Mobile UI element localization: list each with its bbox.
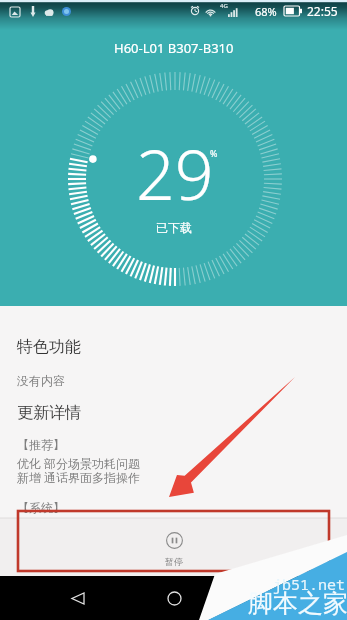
staticText: H60-L01 B307-B310: [114, 39, 234, 57]
staticText: %: [210, 147, 218, 159]
staticText: 优化 部分场景功耗问题: [17, 455, 141, 471]
staticText: 已下载: [156, 220, 192, 235]
staticText: 新增 通话界面多指操作: [17, 469, 141, 485]
staticText: 脚本之家: [248, 588, 347, 619]
staticText: 68%: [255, 4, 277, 19]
staticText: 22:55: [307, 3, 338, 19]
button[interactable]: Home: [144, 576, 204, 620]
staticText: 【系统】: [17, 500, 65, 515]
button[interactable]: Recent apps: [240, 576, 300, 620]
button[interactable]: Back: [47, 576, 107, 620]
staticText: 更新详情: [17, 403, 81, 423]
button[interactable]: 暂停: [0, 518, 347, 576]
staticText: 29: [136, 127, 214, 220]
staticText: 暂停: [165, 556, 183, 567]
staticText: 没有内容: [17, 373, 65, 388]
staticText: jb51.net: [273, 574, 346, 594]
staticText: 4G: [220, 2, 228, 10]
staticText: 特色功能: [17, 337, 81, 357]
staticText: 【推荐】: [17, 437, 65, 452]
